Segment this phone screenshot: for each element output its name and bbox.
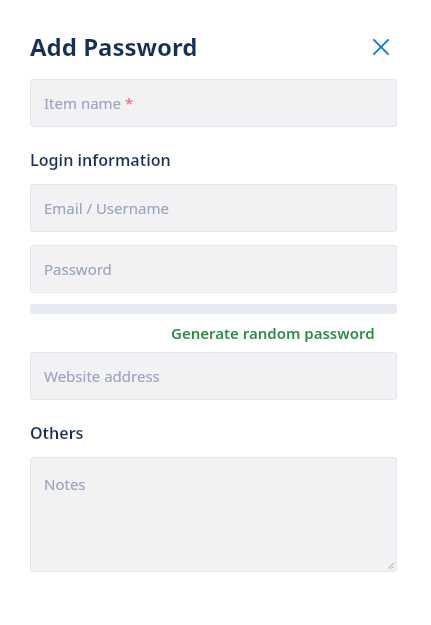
- staticText: Generate random password: [171, 323, 375, 343]
- button[interactable]: Notes: [30, 457, 397, 572]
- button[interactable]: Close: [365, 31, 397, 63]
- staticText: Email / Username: [44, 198, 169, 218]
- staticText: Website address: [44, 366, 160, 386]
- staticText: Password: [44, 259, 112, 279]
- staticText: Add Password: [30, 30, 365, 63]
- button[interactable]: Email / Username: [30, 184, 397, 232]
- staticText: Notes: [44, 474, 86, 494]
- staticText: Others: [30, 422, 84, 444]
- staticText: Item name *: [44, 93, 134, 113]
- button[interactable]: Generate random password: [169, 321, 377, 345]
- button[interactable]: Password: [30, 245, 397, 293]
- staticText: Login information: [30, 149, 171, 171]
- button[interactable]: Website address: [30, 352, 397, 400]
- button[interactable]: Item name *: [30, 79, 397, 127]
